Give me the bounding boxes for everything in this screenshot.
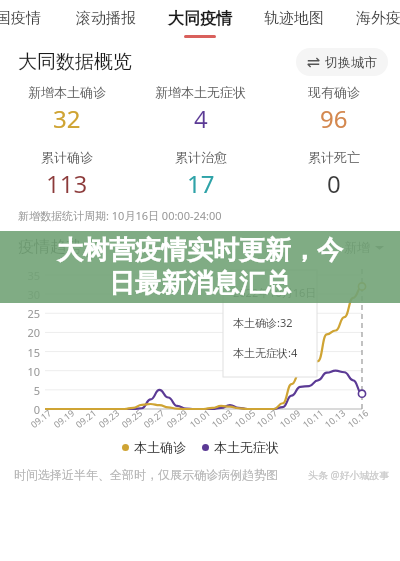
button[interactable]: 本土确诊 — [122, 439, 186, 455]
staticText: 累计治愈 — [175, 149, 227, 165]
staticText: 2022年10月16日 — [233, 285, 317, 300]
staticText: 10.16 — [345, 406, 371, 430]
staticText: 本土确诊 — [134, 439, 186, 455]
staticText: 09.29 — [164, 406, 190, 430]
staticText: 切换城市 — [325, 54, 377, 70]
staticText: 09.21 — [73, 406, 99, 430]
button[interactable]: 国疫情 — [0, 0, 60, 46]
staticText: 0 — [16, 402, 40, 417]
button[interactable]: 轨迹地图 — [248, 0, 340, 46]
staticText: 09.25 — [119, 406, 145, 430]
staticText: 本土无症状 — [214, 439, 279, 455]
staticText: 疫情趋势 — [18, 237, 82, 257]
staticText: 96 — [320, 102, 348, 135]
staticText: 轨迹地图 — [264, 9, 324, 28]
button[interactable]: 累计治愈 — [134, 149, 267, 200]
staticText: 10 — [16, 364, 40, 379]
staticText: 4 — [194, 102, 208, 135]
staticText: 10.07 — [254, 406, 280, 430]
staticText: 头条 @好小城故事 — [308, 468, 390, 482]
staticText: 滚动播报 — [76, 9, 136, 28]
button[interactable]: 新增 — [344, 239, 384, 255]
staticText: 新增 — [344, 239, 370, 255]
staticText: 本土无症状:4 — [233, 345, 298, 360]
staticText: 大同数据概览 — [18, 50, 132, 74]
staticText: 09.17 — [28, 406, 54, 430]
staticText: 32 — [53, 102, 81, 135]
button[interactable]: Switch city — [296, 48, 388, 76]
button[interactable]: 累计死亡 — [267, 149, 400, 200]
button[interactable]: 新增本土无症状 — [134, 84, 267, 135]
staticText: 新增本土无症状 — [155, 84, 246, 100]
staticText: 113 — [46, 167, 88, 200]
staticText: 09.27 — [141, 406, 167, 430]
staticText: 海外疫 — [356, 9, 400, 28]
staticText: 现有确诊 — [308, 84, 360, 100]
staticText: 新增数据统计周期: 10月16日 00:00-24:00 — [18, 208, 222, 223]
staticText: 累计死亡 — [308, 149, 360, 165]
staticText: 25 — [16, 306, 40, 321]
staticText: 5 — [16, 383, 40, 398]
other: Switch city — [307, 56, 320, 69]
staticText: 20 — [16, 325, 40, 340]
staticText: 累计确诊 — [41, 149, 93, 165]
button[interactable]: 累计确诊 — [0, 149, 134, 200]
staticText: 10.05 — [232, 406, 258, 430]
staticText: 10.09 — [277, 406, 303, 430]
staticText: 国疫情 — [0, 9, 41, 28]
staticText: 大树营疫情实时更新，今 — [57, 234, 343, 267]
button[interactable]: 本土无症状 — [202, 439, 279, 455]
staticText: 时间选择近半年、全部时，仅展示确诊病例趋势图 — [14, 467, 278, 482]
staticText: 10.01 — [187, 406, 213, 430]
button[interactable]: 新增本土确诊 — [0, 84, 134, 135]
button[interactable]: 现有确诊 — [267, 84, 400, 135]
staticText: 10.11 — [300, 406, 326, 430]
staticText: 日最新消息汇总 — [109, 267, 291, 300]
other: Expand — [375, 243, 384, 252]
staticText: 15 — [16, 345, 40, 360]
staticText: 09.23 — [96, 406, 122, 430]
staticText: 新增本土确诊 — [28, 84, 106, 100]
button[interactable]: 滚动播报 — [60, 0, 152, 46]
staticText: 10.13 — [322, 406, 348, 430]
staticText: 0 — [327, 167, 341, 200]
staticText: 09.19 — [51, 406, 77, 430]
staticText: 10.03 — [209, 406, 235, 430]
button[interactable]: 海外疫 — [340, 0, 400, 46]
staticText: 大同疫情 — [168, 9, 232, 29]
button[interactable]: 大同疫情 — [152, 0, 248, 46]
staticText: 17 — [187, 167, 215, 200]
staticText: 本土确诊:32 — [233, 315, 293, 330]
